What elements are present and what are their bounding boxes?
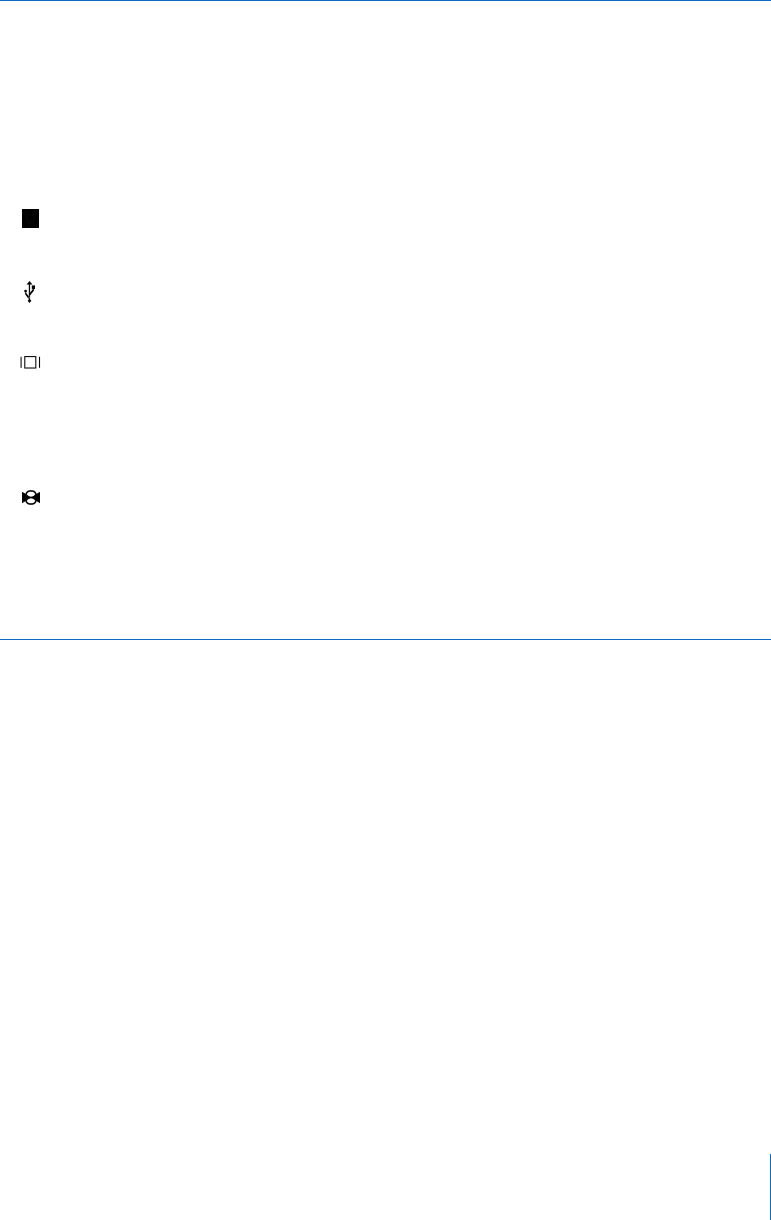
button[interactable]: Video Output	[0, 462, 771, 533]
button[interactable]: Wireless Display	[0, 185, 771, 256]
button[interactable]: External Monitor	[0, 327, 771, 398]
button[interactable]: USB Accessories	[0, 256, 771, 327]
